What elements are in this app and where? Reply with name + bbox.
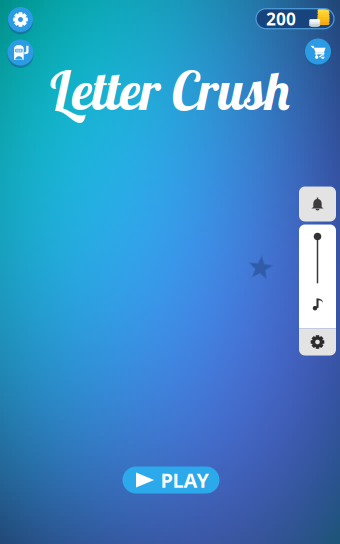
button[interactable]: Settings bbox=[8, 5, 33, 33]
button[interactable]: PLAY bbox=[122, 466, 219, 493]
staticText: PLAY bbox=[160, 467, 209, 493]
button[interactable]: Audio settings bbox=[299, 328, 336, 355]
staticText: 200 bbox=[266, 7, 296, 30]
button[interactable]: Notifications bbox=[299, 186, 336, 221]
staticText: Letter Crush bbox=[47, 57, 292, 123]
button[interactable]: Slot machine bbox=[7, 38, 33, 67]
button[interactable]: Coins: 200 bbox=[256, 9, 334, 29]
button[interactable]: Shop bbox=[305, 37, 331, 66]
